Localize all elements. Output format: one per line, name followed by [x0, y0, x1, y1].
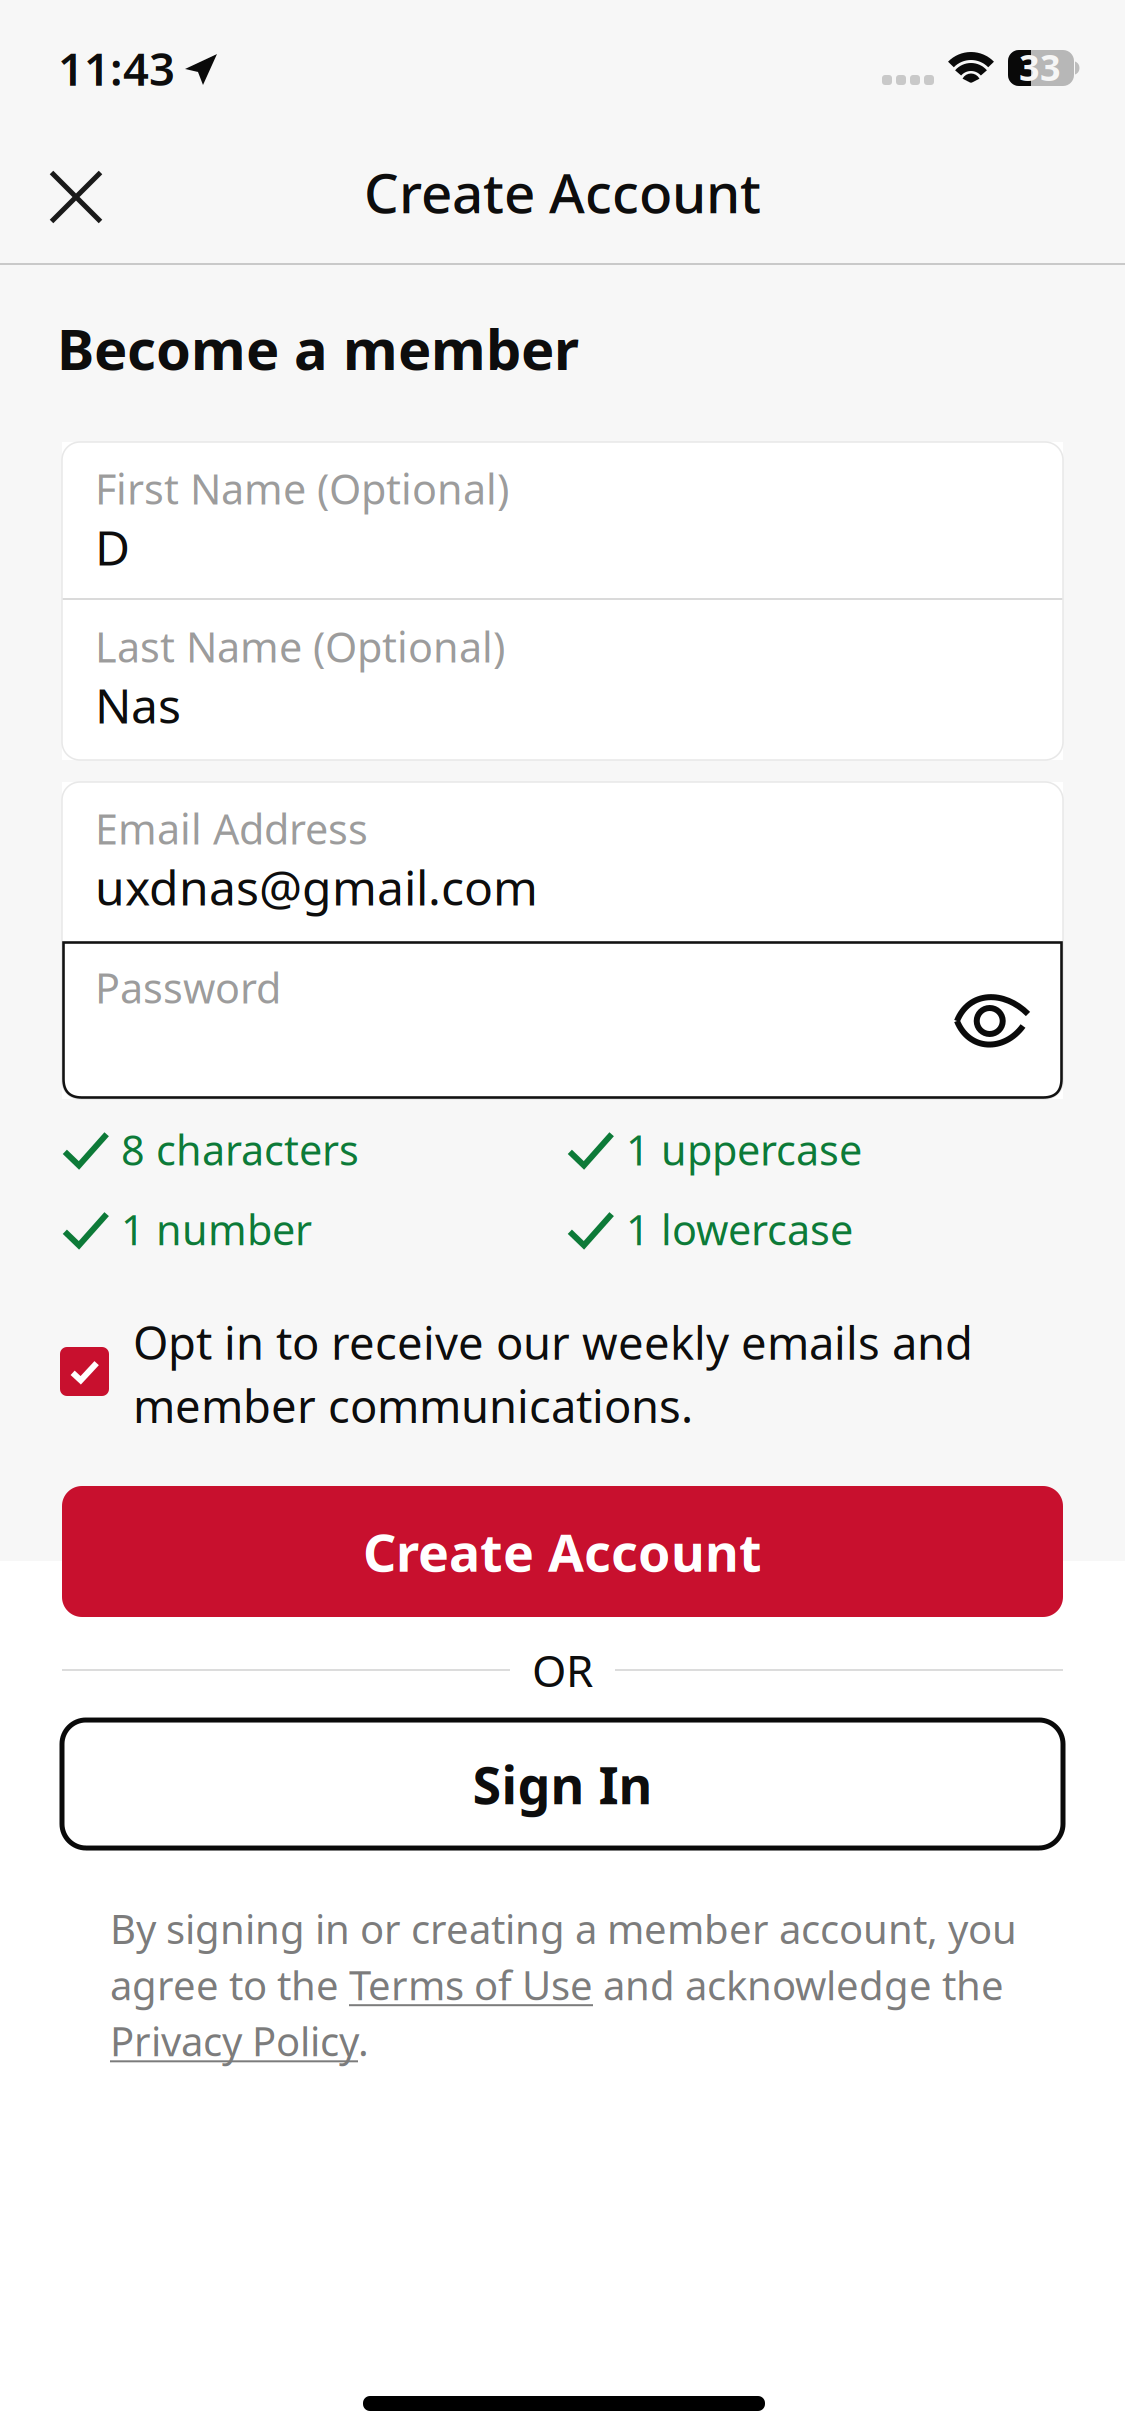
staticText: Become a member: [57, 311, 579, 385]
button[interactable]: Email Address: [62, 782, 1063, 941]
button[interactable]: Password: [62, 941, 1063, 1099]
staticText: By signing in or creating a member accou…: [110, 1902, 1017, 2067]
staticText: OR: [532, 1641, 593, 1699]
staticText: 1 number: [121, 1202, 312, 1257]
staticText: 1 uppercase: [626, 1122, 862, 1177]
staticText: Create Account: [364, 156, 761, 228]
staticText: First Name (Optional): [95, 461, 509, 516]
staticText: 1 lowercase: [626, 1202, 853, 1257]
staticText: uxdnas@gmail.com: [95, 855, 538, 919]
button[interactable]: Last Name (Optional): [62, 600, 1063, 760]
staticText: Email Address: [95, 801, 368, 856]
staticText: Last Name (Optional): [95, 619, 505, 674]
staticText: Create Account: [363, 1517, 762, 1586]
staticText: 11:43: [58, 38, 175, 98]
button[interactable]: Sign In: [62, 1720, 1063, 1848]
staticText: Nas: [95, 673, 181, 737]
button[interactable]: Show password: [954, 994, 1030, 1048]
staticText: D: [95, 515, 130, 579]
button[interactable]: Close: [40, 160, 170, 232]
staticText: 8 characters: [121, 1122, 359, 1177]
button[interactable]: Opt in to receive weekly emails: [60, 1347, 109, 1396]
staticText: Sign In: [472, 1749, 652, 1819]
staticText: 33: [1019, 43, 1061, 91]
staticText: Opt in to receive our weekly emails and …: [133, 1312, 973, 1435]
button[interactable]: First Name (Optional): [62, 442, 1063, 598]
button[interactable]: Create Account: [62, 1486, 1063, 1617]
staticText: Password: [95, 960, 281, 1015]
